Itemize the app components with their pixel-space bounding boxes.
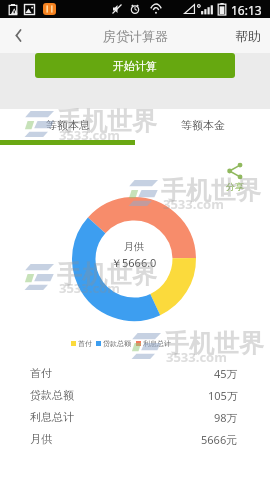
staticText: 手机世界 xyxy=(57,106,157,137)
staticText: 首付 xyxy=(30,366,52,380)
staticText: 98万 xyxy=(214,410,238,425)
button[interactable]: 等额本金 xyxy=(135,109,270,140)
button[interactable]: 开始计算 xyxy=(35,53,235,78)
staticText: 45万 xyxy=(214,366,238,381)
staticText: 分享 xyxy=(226,181,244,192)
staticText: 16:13 xyxy=(231,2,262,18)
staticText: 3533.com xyxy=(166,348,227,366)
staticText: 首付 xyxy=(78,339,92,348)
staticText: 等额本息 xyxy=(46,118,90,132)
button[interactable]: 首付 xyxy=(0,362,270,384)
other: Share xyxy=(226,162,244,180)
staticText: 手机世界 xyxy=(161,175,261,206)
staticText: 105万 xyxy=(208,388,238,403)
staticText: 利息总计 xyxy=(30,410,74,424)
staticText: 等额本金 xyxy=(181,118,225,132)
staticText: 月供 xyxy=(30,432,52,446)
button[interactable]: 等额本息 xyxy=(0,109,135,140)
button[interactable]: Share xyxy=(222,160,248,194)
staticText: 月供 xyxy=(124,240,144,253)
button[interactable]: 利息总计 xyxy=(0,406,270,428)
button[interactable]: 月供 xyxy=(0,428,270,450)
staticText: 贷款总额 xyxy=(103,339,131,348)
button[interactable]: 贷款总额 xyxy=(0,384,270,406)
staticText: 3533.com xyxy=(59,279,120,297)
staticText: 手机世界 xyxy=(164,328,264,359)
staticText: 贷款总额 xyxy=(30,388,74,402)
staticText: 房贷计算器 xyxy=(103,28,168,44)
button[interactable]: 帮助 xyxy=(226,18,270,53)
staticText: 开始计算 xyxy=(113,59,157,73)
staticText: 帮助 xyxy=(235,28,261,44)
staticText: 手机世界 xyxy=(57,259,157,290)
staticText: 3533.com xyxy=(163,195,224,213)
staticText: ￥5666.0 xyxy=(111,255,157,270)
staticText: 5666元 xyxy=(201,432,238,447)
button[interactable]: Back xyxy=(0,18,36,53)
staticText: 3533.com xyxy=(59,126,120,144)
staticText: 利息总计 xyxy=(143,339,171,348)
